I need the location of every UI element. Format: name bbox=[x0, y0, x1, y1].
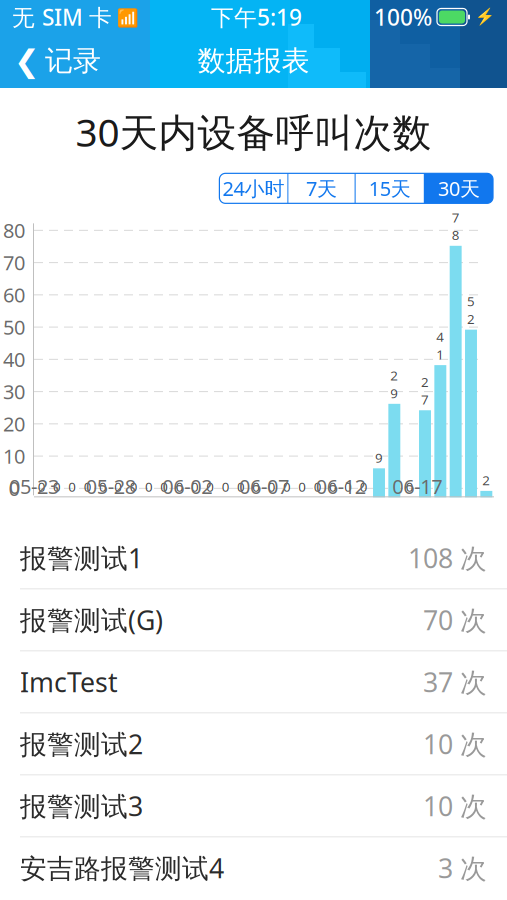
button[interactable]: 报警测试3 bbox=[0, 775, 507, 836]
button[interactable]: 安吉路报警测试4 bbox=[0, 837, 507, 898]
staticText: 记录 bbox=[45, 44, 101, 78]
staticText: 70 bbox=[3, 249, 25, 276]
staticText: 0 bbox=[191, 478, 199, 495]
staticText: 27 bbox=[421, 373, 429, 408]
staticText: 10 次 bbox=[423, 726, 487, 761]
button[interactable]: 30天 bbox=[425, 173, 493, 203]
staticText: 无 SIM 卡 bbox=[12, 2, 112, 32]
button[interactable]: 报警测试1 bbox=[0, 527, 507, 588]
staticText: 30天 bbox=[438, 175, 480, 202]
staticText: 0 bbox=[206, 478, 214, 495]
staticText: 0 bbox=[314, 478, 322, 495]
staticText: 0 bbox=[99, 478, 107, 495]
staticText: 0 bbox=[114, 478, 122, 495]
staticText: 0 bbox=[268, 478, 276, 495]
staticText: 0 bbox=[344, 478, 352, 495]
staticText: 报警测试(G) bbox=[20, 602, 163, 637]
button[interactable]: 15天 bbox=[356, 173, 424, 203]
staticText: 0 bbox=[283, 478, 291, 495]
staticText: 52 bbox=[467, 292, 475, 328]
staticText: 41 bbox=[436, 328, 444, 363]
staticText: 10 bbox=[3, 443, 25, 469]
staticText: 0 bbox=[8, 475, 19, 502]
staticText: 0 bbox=[329, 478, 337, 495]
staticText: 报警测试1 bbox=[20, 540, 143, 575]
staticText: 05-28 bbox=[86, 473, 136, 500]
staticText: 06-02 bbox=[162, 473, 212, 500]
button[interactable]: 返回记录 bbox=[0, 34, 115, 88]
staticText: 2 bbox=[482, 471, 490, 489]
button[interactable]: ImcTest bbox=[0, 651, 507, 712]
staticText: 24小时 bbox=[222, 175, 284, 202]
staticText: 0 bbox=[406, 478, 414, 495]
button[interactable]: 报警测试2 bbox=[0, 713, 507, 774]
staticText: 108 次 bbox=[408, 540, 487, 575]
staticText: ImcTest bbox=[20, 664, 118, 699]
button[interactable]: 7天 bbox=[289, 173, 355, 203]
staticText: 05-23 bbox=[9, 473, 59, 500]
staticText: 📶 bbox=[112, 5, 139, 28]
staticText: 0 bbox=[84, 478, 92, 495]
staticText: 78 bbox=[452, 208, 460, 244]
button[interactable]: 24小时 bbox=[219, 173, 287, 203]
staticText: 0 bbox=[222, 478, 230, 495]
staticText: 报警测试3 bbox=[20, 788, 143, 823]
staticText: 10 次 bbox=[423, 788, 487, 823]
staticText: ❮ bbox=[14, 44, 40, 78]
staticText: 100% bbox=[374, 2, 432, 32]
staticText: 60 bbox=[3, 282, 25, 308]
staticText: 0 bbox=[68, 478, 76, 495]
staticText: 70 次 bbox=[423, 602, 487, 637]
staticText: 安吉路报警测试4 bbox=[20, 850, 224, 885]
staticText: 报警测试2 bbox=[20, 726, 143, 761]
staticText: 50 bbox=[3, 314, 25, 340]
staticText: 0 bbox=[237, 478, 245, 495]
staticText: 30 bbox=[3, 378, 25, 405]
staticText: 数据报表 bbox=[197, 44, 309, 78]
staticText: 29 bbox=[390, 366, 398, 402]
staticText: 06-07 bbox=[239, 473, 289, 500]
staticText: 0 bbox=[38, 478, 46, 495]
staticText: 0 bbox=[160, 478, 168, 495]
staticText: 9 bbox=[375, 449, 383, 466]
staticText: 0 bbox=[176, 478, 184, 495]
staticText: 0 bbox=[130, 478, 138, 495]
staticText: 0 bbox=[252, 478, 260, 495]
staticText: 15天 bbox=[369, 175, 411, 202]
staticText: 06-17 bbox=[392, 473, 442, 500]
staticText: 下午5:19 bbox=[211, 2, 302, 32]
staticText: 0 bbox=[145, 478, 153, 495]
staticText: 0 bbox=[360, 478, 368, 495]
staticText: 7天 bbox=[306, 175, 337, 202]
staticText: 30天内设备呼叫次数 bbox=[75, 106, 431, 157]
staticText: 3 次 bbox=[438, 850, 487, 885]
staticText: 0 bbox=[298, 478, 306, 495]
staticText: 20 bbox=[3, 411, 25, 437]
button[interactable]: 报警测试(G) bbox=[0, 589, 507, 650]
staticText: 06-12 bbox=[316, 473, 366, 500]
staticText: 37 次 bbox=[423, 664, 487, 699]
staticText: 40 bbox=[3, 346, 25, 373]
staticText: 80 bbox=[3, 217, 25, 244]
staticText: 0 bbox=[53, 478, 61, 495]
staticText: ⚡ bbox=[475, 8, 495, 26]
